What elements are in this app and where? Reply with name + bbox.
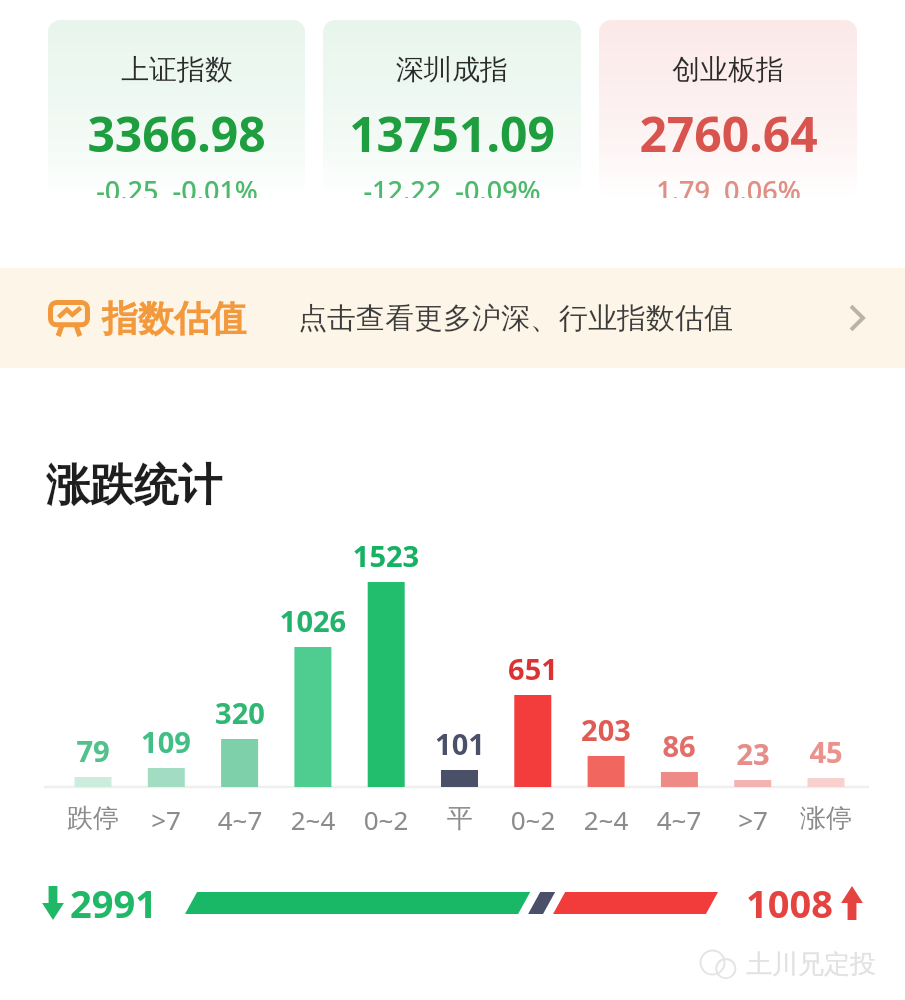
- staticText: 651: [488, 649, 578, 688]
- button[interactable]: 上证指数: [48, 20, 305, 198]
- staticText: 1008: [746, 877, 833, 929]
- staticText: 0~2: [488, 802, 578, 837]
- button[interactable]: 创业板指: [599, 20, 857, 198]
- staticText: 4~7: [195, 802, 285, 837]
- staticText: 深圳成指: [396, 52, 508, 87]
- other: 下跌: [40, 886, 66, 920]
- staticText: 3366.98: [87, 101, 266, 166]
- staticText: 跌停: [48, 802, 138, 835]
- staticText: 上证指数: [121, 52, 233, 87]
- button[interactable]: 指数估值: [0, 268, 905, 368]
- staticText: 45: [781, 732, 871, 771]
- staticText: 2~4: [268, 802, 358, 837]
- staticText: 109: [121, 722, 211, 761]
- button[interactable]: 深圳成指: [323, 20, 581, 198]
- staticText: 86: [634, 726, 724, 765]
- staticText: 创业板指: [672, 52, 784, 87]
- staticText: 1523: [341, 536, 431, 575]
- staticText: 涨停: [781, 802, 871, 835]
- staticText: 13751.09: [349, 101, 555, 166]
- staticText: 101: [415, 724, 505, 763]
- staticText: 320: [195, 693, 285, 732]
- staticText: 203: [561, 710, 651, 749]
- staticText: 土川兄定投: [746, 948, 876, 981]
- staticText: 2991: [70, 877, 157, 929]
- staticText: 1026: [268, 601, 358, 640]
- staticText: 2~4: [561, 802, 651, 837]
- staticText: 平: [415, 802, 505, 835]
- staticText: 23: [708, 734, 798, 773]
- other: 查看更多指数估值: [847, 301, 867, 335]
- other: 上涨: [839, 886, 865, 920]
- staticText: 4~7: [634, 802, 724, 837]
- staticText: 1.79 0.06%: [656, 172, 801, 198]
- staticText: 2760.64: [639, 101, 818, 166]
- staticText: 点击查看更多沪深、行业指数估值: [298, 300, 733, 337]
- staticText: >7: [121, 802, 211, 837]
- staticText: 涨跌统计: [46, 458, 222, 513]
- staticText: >7: [708, 802, 798, 837]
- staticText: -0.25 -0.01%: [96, 172, 258, 198]
- staticText: 0~2: [341, 802, 431, 837]
- staticText: -12.22 -0.09%: [363, 172, 541, 198]
- staticText: 指数估值: [102, 296, 246, 341]
- staticText: 79: [48, 731, 138, 770]
